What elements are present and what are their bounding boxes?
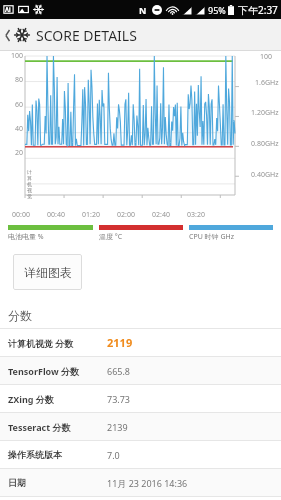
staticText: 分数: [8, 308, 32, 323]
staticText: 02:40: [152, 210, 170, 220]
staticText: 觉: [27, 193, 32, 199]
staticText: 73.73: [107, 393, 131, 405]
staticText: 算: [27, 175, 32, 181]
staticText: 95%: [208, 4, 226, 16]
staticText: 详细图表: [24, 265, 72, 280]
staticText: 计: [27, 169, 32, 175]
staticText: 1.20GHz: [251, 108, 279, 118]
staticText: 80: [0, 75, 23, 85]
staticText: 2119: [107, 335, 133, 350]
staticText: 20: [0, 148, 23, 158]
staticText: 7.0: [107, 449, 120, 461]
button[interactable]: Tesseract 分数: [0, 413, 281, 440]
button[interactable]: TensorFlow 分数: [0, 357, 281, 384]
staticText: 0.40GHz: [251, 170, 279, 180]
staticText: ZXing 分数: [8, 393, 54, 405]
staticText: 40: [0, 124, 23, 134]
staticText: 03:20: [187, 210, 205, 220]
staticText: 60: [0, 100, 23, 110]
button[interactable]: 计算机视觉 分数: [0, 329, 281, 356]
button[interactable]: Back: [2, 22, 14, 48]
staticText: 665.8: [107, 365, 131, 377]
staticText: 0.80GHz: [251, 139, 279, 149]
staticText: 日期: [8, 477, 26, 488]
button[interactable]: 操作系统版本: [0, 441, 281, 468]
staticText: 操作系统版本: [8, 449, 62, 460]
staticText: 温度 °C: [99, 232, 123, 242]
staticText: 机: [27, 181, 32, 187]
button[interactable]: ZXing 分数: [0, 385, 281, 412]
staticText: SCORE DETAILS: [36, 26, 137, 45]
staticText: 计算机视觉 分数: [8, 337, 74, 349]
staticText: 100: [259, 52, 272, 62]
staticText: 01:20: [82, 210, 100, 220]
staticText: TensorFlow 分数: [8, 365, 80, 377]
staticText: 00:00: [12, 210, 30, 220]
staticText: 2139: [107, 421, 128, 433]
staticText: Tesseract 分数: [8, 421, 71, 433]
staticText: 02:00: [117, 210, 135, 220]
staticText: 下午2:37: [238, 3, 278, 17]
staticText: 100: [0, 51, 23, 61]
staticText: 11月 23 2016 14:36: [107, 477, 188, 489]
staticText: 电池电量 %: [8, 232, 44, 242]
button[interactable]: 详细图表: [13, 254, 82, 290]
button[interactable]: 日期: [0, 469, 281, 496]
staticText: CPU 时钟 GHz: [189, 232, 234, 242]
staticText: 视: [27, 187, 32, 193]
staticText: N: [139, 4, 147, 16]
staticText: 00:40: [47, 210, 65, 220]
staticText: 1.6GHz: [255, 78, 279, 88]
